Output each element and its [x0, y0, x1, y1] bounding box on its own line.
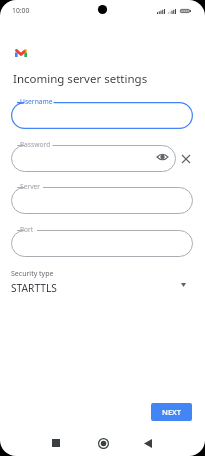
staticText: Incoming server settings: [13, 71, 148, 87]
button[interactable]: NEXT: [151, 403, 192, 421]
staticText: Port: [20, 225, 34, 234]
staticText: Server: [20, 182, 41, 191]
button[interactable]: Home: [91, 431, 115, 455]
button[interactable]: Password: [11, 145, 176, 172]
button[interactable]: Server: [11, 187, 193, 214]
staticText: 10:00: [12, 6, 30, 15]
button[interactable]: Username: [11, 102, 193, 129]
button[interactable]: Port: [11, 230, 193, 257]
button[interactable]: Clear password: [179, 152, 193, 166]
button[interactable]: Recent apps: [44, 431, 68, 455]
staticText: Password: [20, 140, 51, 149]
button[interactable]: Back: [136, 431, 160, 455]
staticText: STARTTLS: [11, 281, 57, 295]
staticText: NEXT: [162, 407, 182, 417]
staticText: Security type: [11, 269, 54, 279]
staticText: Username: [20, 97, 53, 106]
button[interactable]: Show password: [154, 149, 170, 165]
button[interactable]: Security type: [0, 265, 205, 297]
